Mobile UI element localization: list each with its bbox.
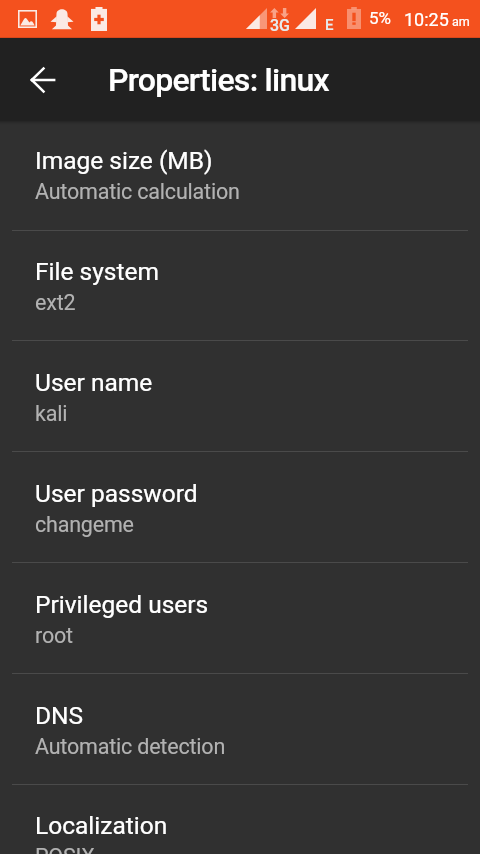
button[interactable]: Image size (MB) bbox=[0, 121, 480, 232]
staticText: root bbox=[35, 623, 73, 648]
button[interactable]: Privileged users bbox=[0, 565, 480, 676]
staticText: am bbox=[452, 14, 470, 29]
staticText: DNS bbox=[35, 701, 84, 730]
button[interactable]: Navigate up bbox=[19, 56, 67, 104]
button[interactable]: User name bbox=[0, 343, 480, 454]
staticText: 5% bbox=[369, 8, 392, 28]
staticText: Image size (MB) bbox=[35, 146, 213, 175]
staticText: 10:25 bbox=[404, 9, 449, 30]
staticText: kali bbox=[35, 401, 68, 426]
button[interactable]: Localization bbox=[0, 786, 480, 854]
staticText: File system bbox=[35, 257, 159, 286]
staticText: Automatic detection bbox=[35, 734, 226, 759]
staticText: Automatic calculation bbox=[35, 179, 240, 204]
button[interactable]: DNS bbox=[0, 676, 480, 787]
button[interactable]: User password bbox=[0, 454, 480, 565]
staticText: Localization bbox=[35, 811, 168, 840]
staticText: ext2 bbox=[35, 290, 76, 315]
staticText: changeme bbox=[35, 512, 134, 537]
staticText: User name bbox=[35, 368, 153, 397]
staticText: User password bbox=[35, 479, 198, 508]
staticText: Properties: linux bbox=[108, 61, 329, 99]
staticText: POSIX bbox=[35, 844, 95, 854]
staticText: Privileged users bbox=[35, 590, 209, 619]
staticText: E bbox=[325, 16, 334, 34]
button[interactable]: File system bbox=[0, 232, 480, 343]
staticText: 3G bbox=[270, 16, 290, 35]
